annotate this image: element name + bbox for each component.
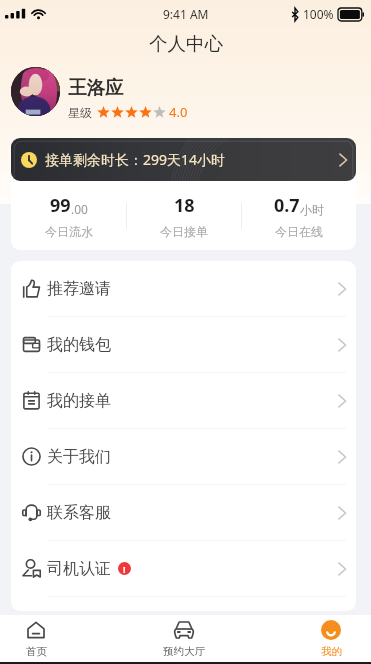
button[interactable]: 关于我们 [11, 429, 356, 484]
staticText: 首页 [26, 645, 47, 658]
button[interactable]: 联系客服 [11, 485, 356, 540]
staticText: 今日在线 [275, 224, 323, 239]
staticText: .00 [71, 201, 88, 217]
staticText: 今日流水 [45, 224, 93, 239]
staticText: 我的钱包 [47, 335, 111, 355]
staticText: ! [123, 563, 126, 575]
button[interactable]: 我的接单 [11, 373, 356, 428]
button[interactable]: 我的 [301, 615, 361, 662]
staticText: 王洛应 [68, 76, 124, 99]
staticText: 今日接单 [160, 224, 208, 239]
staticText: 星级 [68, 105, 92, 120]
staticText: 我的 [321, 645, 342, 658]
staticText: 18 [174, 193, 195, 218]
button[interactable]: 接单剩余时长：299天14小时 [11, 138, 356, 181]
button[interactable]: 我的钱包 [11, 317, 356, 372]
button[interactable]: 司机认证 [11, 541, 356, 596]
staticText: 预约大厅 [163, 645, 205, 658]
staticText: 我的接单 [47, 391, 111, 411]
staticText: 99 [50, 193, 71, 218]
staticText: 9:41 AM [163, 6, 209, 22]
staticText: 4.0 [169, 103, 188, 121]
button[interactable]: 推荐邀请 [11, 261, 356, 316]
staticText: 小时 [300, 202, 324, 217]
button[interactable]: 首页 [6, 615, 66, 662]
staticText: 个人中心 [149, 32, 223, 55]
staticText: 0.7 [274, 193, 300, 218]
staticText: 接单剩余时长：299天14小时 [45, 150, 226, 169]
staticText: 100% [303, 6, 334, 22]
button[interactable]: 预约大厅 [154, 615, 214, 662]
button[interactable] [11, 67, 60, 116]
staticText: 联系客服 [47, 503, 111, 523]
staticText: 司机认证 [47, 559, 111, 579]
staticText: 关于我们 [47, 447, 111, 467]
staticText: 推荐邀请 [47, 279, 111, 299]
